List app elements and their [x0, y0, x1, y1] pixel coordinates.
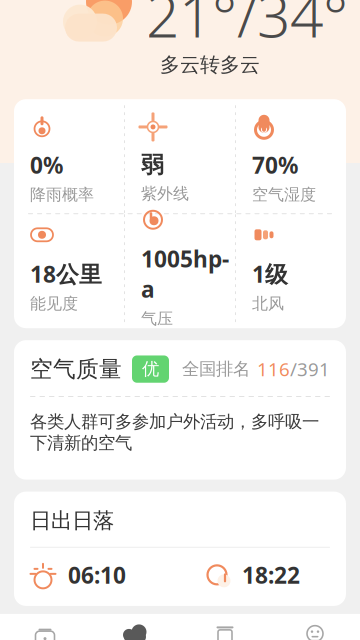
staticText: 空气质量 [30, 355, 122, 383]
staticText: 21°/34° [146, 0, 348, 54]
button[interactable]: 我的 [270, 619, 360, 640]
staticText: 116 [257, 357, 290, 381]
staticText: 1级 [252, 259, 288, 289]
staticText: 气压 [141, 309, 173, 329]
staticText: 优 [142, 358, 159, 380]
staticText: 多云转多云 [160, 53, 260, 77]
staticText: 北风 [252, 294, 284, 314]
staticText: /391 [290, 357, 330, 381]
button[interactable]: 回收站 [180, 619, 270, 640]
staticText: 全国排名 [182, 358, 250, 380]
staticText: 70% [252, 150, 298, 180]
button[interactable]: 空气质量 [14, 340, 346, 480]
staticText: 紫外线 [141, 184, 189, 203]
staticText: 各类人群可多参加户外活动，多呼吸一下清新的空气 [30, 411, 319, 454]
staticText: 0% [30, 150, 63, 180]
staticText: 18公里 [30, 259, 102, 289]
staticText: 日出日落 [30, 508, 114, 534]
staticText: 降雨概率 [30, 185, 94, 205]
staticText: 1005hpa [141, 244, 229, 304]
button[interactable]: 15日预报 [90, 618, 180, 640]
staticText: 空气湿度 [252, 185, 316, 205]
staticText: 18:22 [242, 560, 300, 590]
staticText: 能见度 [30, 294, 78, 314]
staticText: 弱 [141, 151, 164, 179]
staticText: 06:10 [68, 560, 126, 590]
button[interactable]: 首页 [0, 619, 90, 640]
